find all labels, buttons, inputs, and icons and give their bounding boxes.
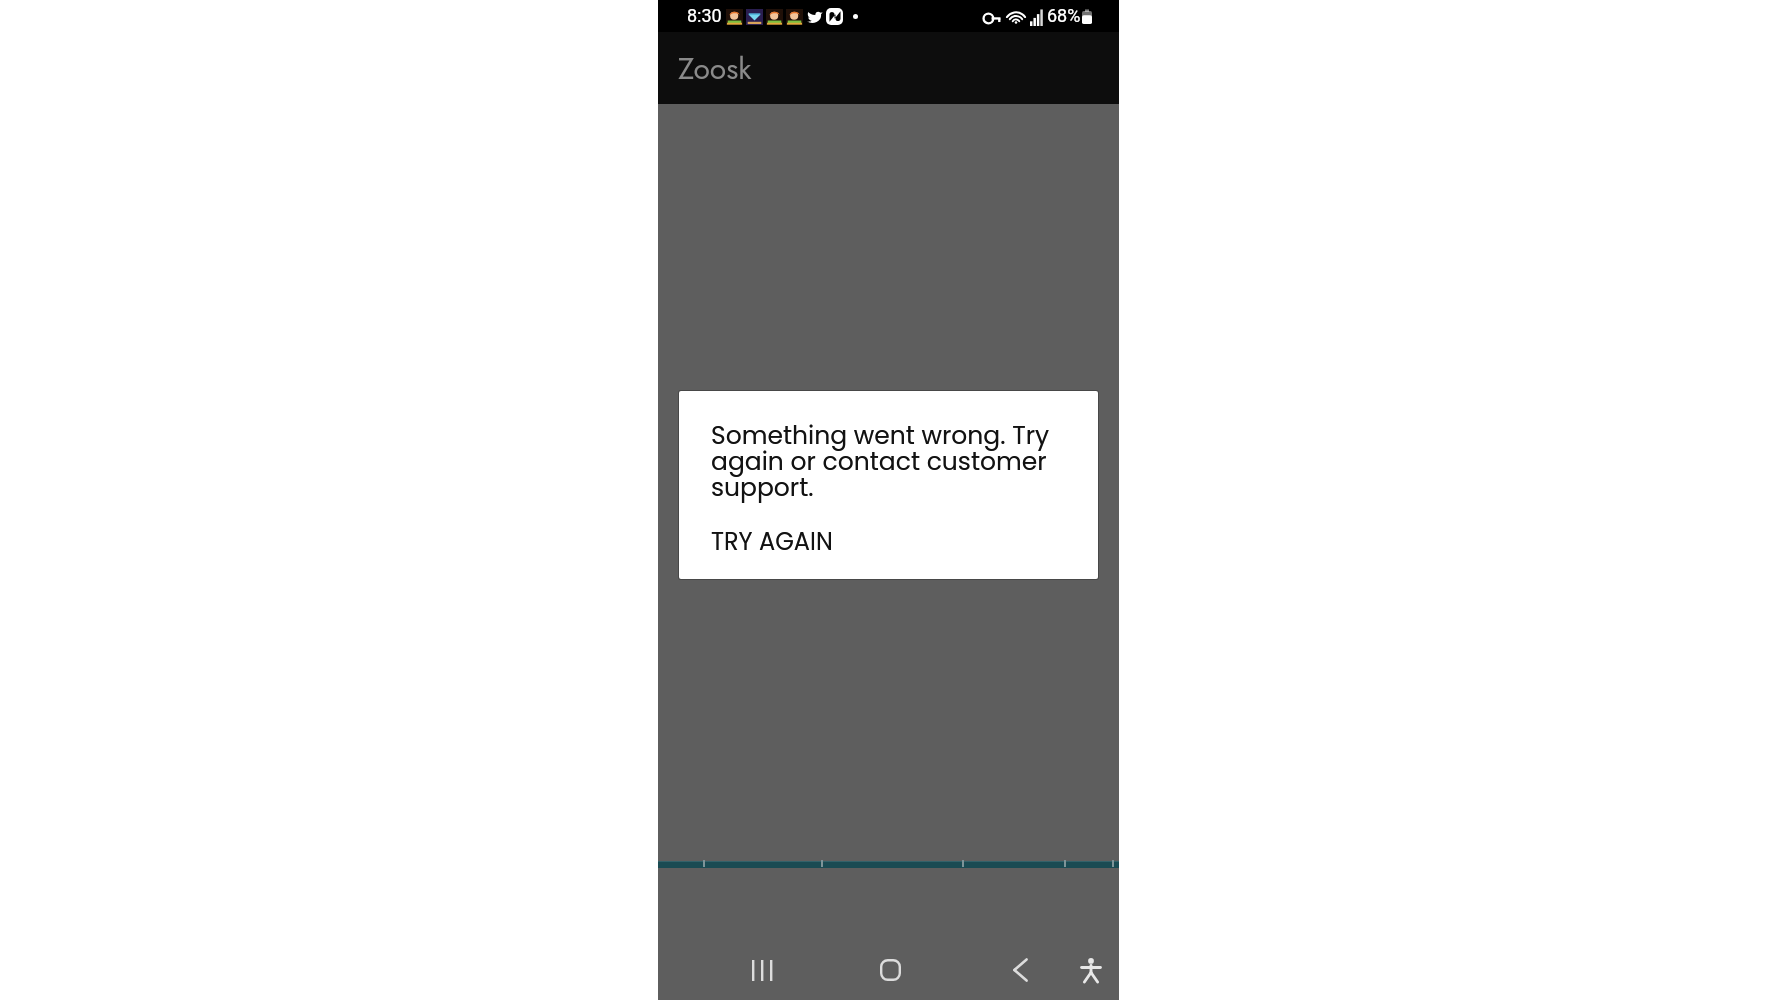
staticText: Something went wrong. Try again or conta… bbox=[711, 418, 1059, 505]
button[interactable]: TRY AGAIN bbox=[711, 525, 833, 559]
staticText: TRY AGAIN bbox=[711, 525, 833, 559]
staticText: TRY AGAIN bbox=[711, 525, 833, 559]
staticText: Something went wrong. Try again or conta… bbox=[711, 418, 1059, 505]
button[interactable]: Recent apps bbox=[739, 946, 783, 994]
button[interactable]: 8:30 bbox=[658, 0, 1119, 1000]
staticText: 8:30 bbox=[687, 5, 722, 26]
button[interactable]: Accessibility bbox=[1070, 946, 1112, 994]
staticText: 68% bbox=[1047, 5, 1081, 26]
button[interactable]: Back bbox=[1000, 946, 1040, 994]
button[interactable]: Home bbox=[868, 946, 912, 994]
staticText: Zoosk bbox=[678, 47, 752, 90]
button[interactable] bbox=[658, 861, 1119, 868]
